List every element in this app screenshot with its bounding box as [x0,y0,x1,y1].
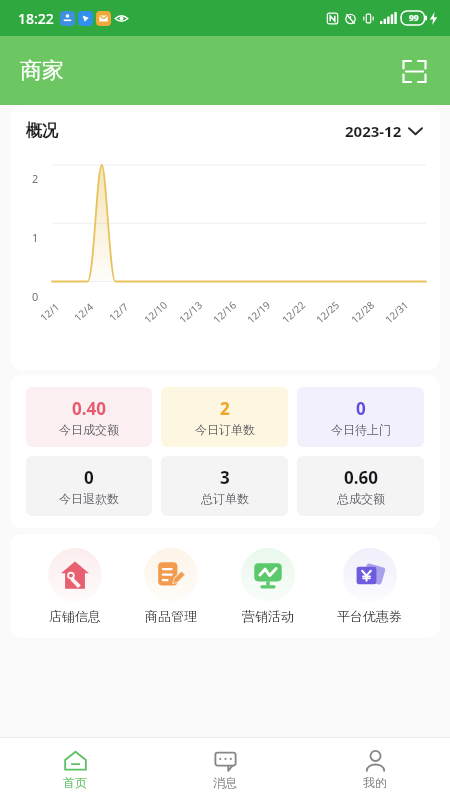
staticText: 2 [32,171,39,186]
staticText: 12/22 [279,298,308,326]
staticText: 平台优惠券 [337,608,402,624]
staticText: 今日待上门 [331,422,391,437]
staticText: 0.60 [344,466,378,489]
button[interactable]: 店铺信息 [44,548,106,624]
staticText: 0 [32,289,39,304]
staticText: 12/13 [176,298,205,326]
staticText: 总成交额 [337,491,385,506]
staticText: 总订单数 [201,491,249,506]
button[interactable]: 平台优惠券 [333,548,406,624]
staticText: 0 [356,397,366,420]
staticText: 0 [84,466,94,489]
staticText: 店铺信息 [49,608,101,624]
button[interactable]: 营销活动 [237,548,299,624]
staticText: 12/4 [71,300,96,324]
staticText: 今日退款数 [59,491,119,506]
staticText: 12/10 [141,298,170,326]
button[interactable]: Scan [394,51,434,91]
staticText: 0.40 [72,397,106,420]
staticText: 商家 [20,57,64,85]
staticText: 12/16 [210,298,239,326]
staticText: 概况 [26,121,58,141]
staticText: 12/1 [37,300,62,324]
staticText: 我的 [363,775,387,790]
staticText: 商品管理 [145,608,197,624]
staticText: 12/7 [106,300,131,324]
staticText: 2023-12 [345,121,402,141]
staticText: 今日成交额 [59,422,119,437]
staticText: 12/28 [348,298,377,326]
button[interactable]: 我的 [300,738,450,800]
staticText: 18:22 [18,9,54,28]
staticText: 营销活动 [242,608,294,624]
button[interactable]: 2023-12 [343,119,424,143]
button[interactable]: 0 [26,456,152,516]
staticText: 今日订单数 [195,422,255,437]
staticText: 消息 [213,775,237,790]
staticText: 12/31 [382,298,411,326]
staticText: 首页 [63,775,87,790]
button[interactable]: 0.60 [297,456,424,516]
button[interactable]: 3 [161,456,288,516]
button[interactable]: 商品管理 [140,548,202,624]
staticText: 12/25 [313,298,342,326]
staticText: 2 [220,397,230,420]
button[interactable]: 0.40 [26,387,152,447]
staticText: 1 [32,230,39,245]
staticText: 12/19 [244,298,273,326]
button[interactable]: 0 [297,387,424,447]
button[interactable]: 2 [161,387,288,447]
staticText: 3 [220,466,230,489]
button[interactable]: 消息 [150,738,300,800]
staticText: 99 [409,12,419,24]
button[interactable]: 首页 [0,738,150,800]
